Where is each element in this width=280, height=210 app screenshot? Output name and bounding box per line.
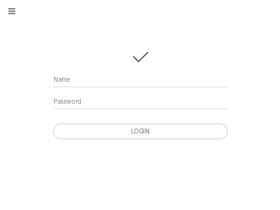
staticText: Name <box>53 76 69 83</box>
staticText: Password <box>53 98 81 105</box>
button[interactable]: Password <box>53 94 227 109</box>
button[interactable]: Name <box>53 72 227 87</box>
staticText: LOGIN <box>131 128 150 135</box>
button[interactable]: LOGIN <box>53 124 227 139</box>
button[interactable]: Menu <box>0 0 15 14</box>
